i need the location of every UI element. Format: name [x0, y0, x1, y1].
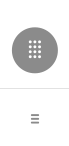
button[interactable]: Keypad: [12, 27, 58, 73]
button[interactable]: Menu: [25, 112, 45, 132]
